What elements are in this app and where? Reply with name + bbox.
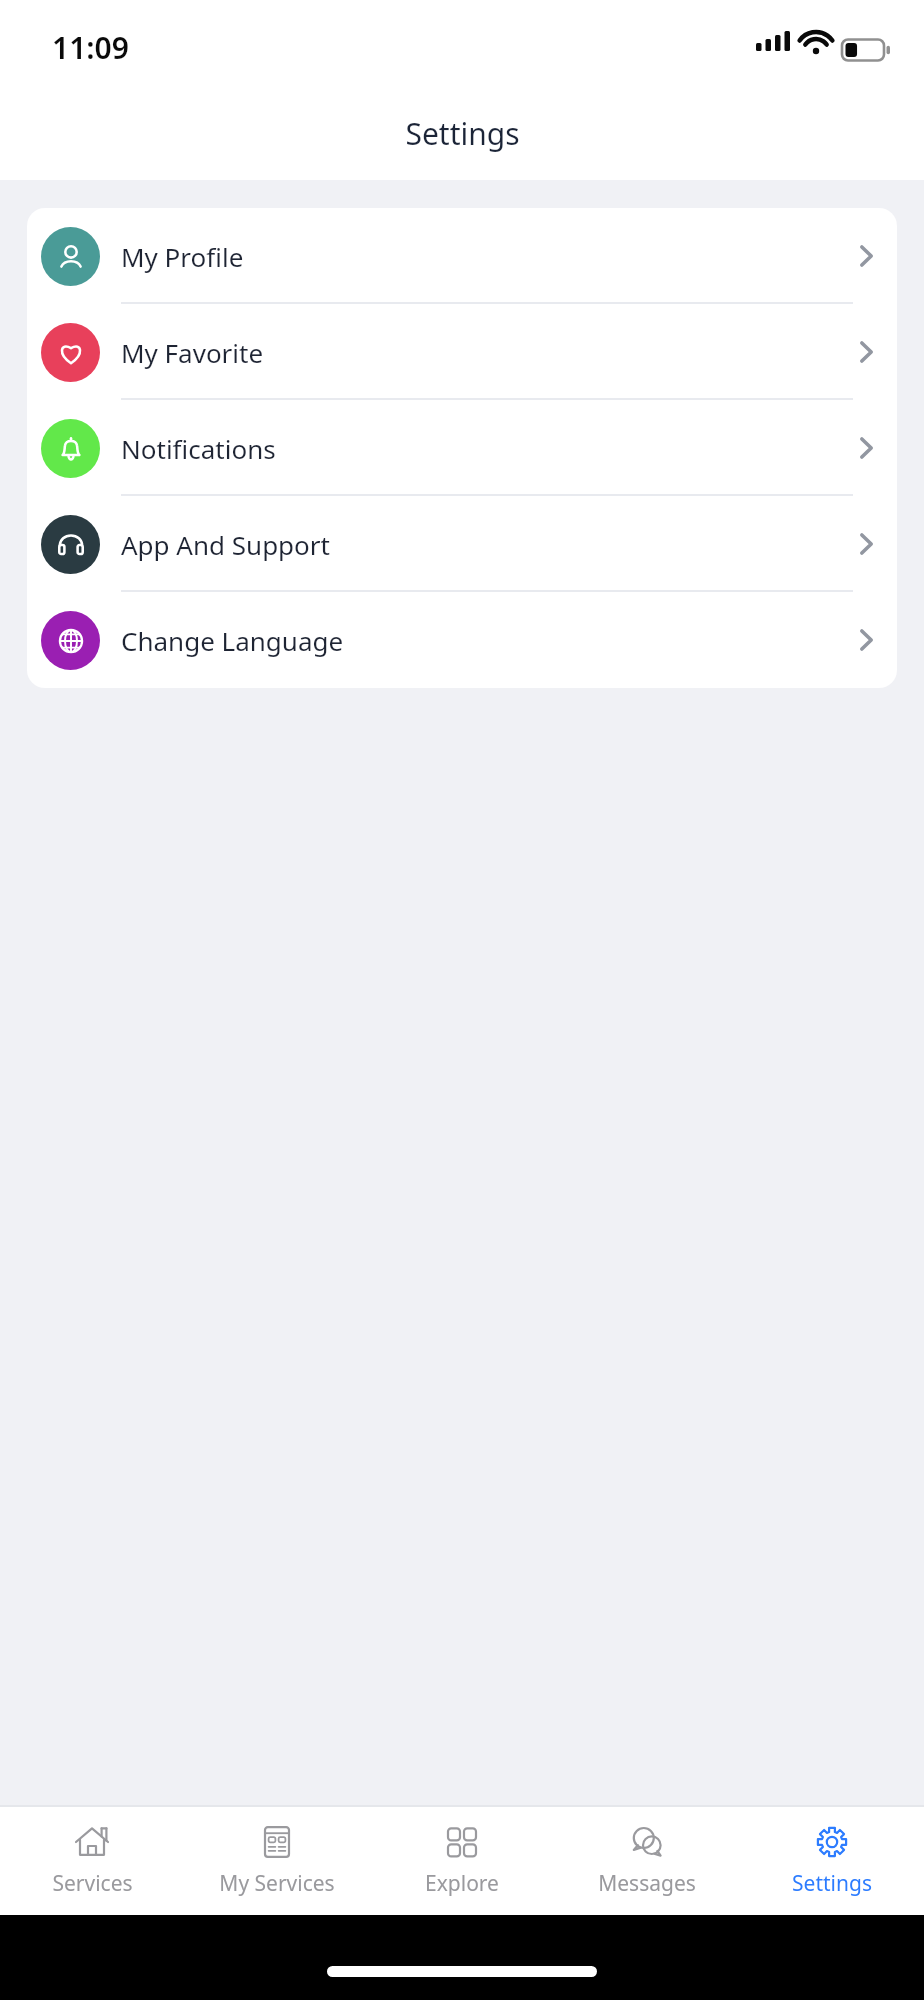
staticText: Settings: [792, 1869, 872, 1898]
button[interactable]: Services: [0, 1805, 184, 1915]
button[interactable]: Explore: [369, 1805, 554, 1915]
button[interactable]: My Favorite: [27, 304, 897, 400]
staticText: 11:09: [52, 27, 129, 68]
staticText: My Favorite: [121, 335, 264, 370]
button[interactable]: My Services: [184, 1805, 369, 1915]
button[interactable]: App And Support: [27, 496, 897, 592]
staticText: Change Language: [121, 623, 344, 658]
button[interactable]: My Profile: [27, 208, 897, 304]
staticText: Explore: [425, 1869, 499, 1898]
staticText: Notifications: [121, 431, 276, 466]
button[interactable]: Change Language: [27, 592, 897, 688]
button[interactable]: Settings: [739, 1805, 924, 1915]
staticText: App And Support: [121, 527, 330, 562]
staticText: My Profile: [121, 239, 244, 274]
staticText: Services: [52, 1869, 133, 1898]
staticText: Messages: [598, 1869, 696, 1898]
button[interactable]: Messages: [554, 1805, 739, 1915]
button[interactable]: Notifications: [27, 400, 897, 496]
staticText: Settings: [405, 113, 520, 154]
staticText: My Services: [219, 1869, 335, 1898]
